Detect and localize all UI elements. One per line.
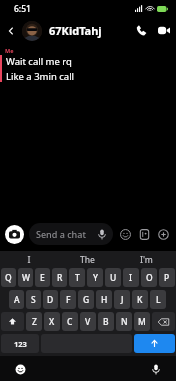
staticText: The [80, 254, 95, 266]
button[interactable]: O [141, 268, 157, 287]
button[interactable]: I [123, 268, 139, 287]
button[interactable]: Shift [1, 312, 24, 331]
button[interactable]: More options [156, 227, 171, 242]
button[interactable]: Stickers [137, 227, 152, 242]
button[interactable]: F [60, 290, 76, 309]
staticText: 123 [14, 339, 27, 349]
staticText: W [22, 272, 30, 284]
button[interactable]: S [26, 290, 41, 309]
staticText: I'm [140, 254, 153, 266]
other: Voice note [98, 229, 106, 240]
button[interactable]: Voice input [148, 361, 164, 377]
button[interactable]: T [69, 268, 85, 287]
staticText: 67KidTahj [49, 23, 102, 38]
staticText: U [110, 272, 117, 284]
staticText: V [85, 316, 91, 328]
button[interactable]: B [98, 312, 114, 331]
staticText: I [129, 272, 133, 284]
button[interactable]: W [18, 268, 33, 287]
staticText: S [31, 294, 36, 306]
staticText: Send a chat [36, 228, 98, 240]
button[interactable]: L [150, 290, 166, 309]
button[interactable]: Z [26, 312, 42, 331]
button[interactable]: Video call [152, 17, 176, 44]
button[interactable]: C [62, 312, 78, 331]
button[interactable]: A [9, 290, 24, 309]
button[interactable]: P [159, 268, 175, 287]
button[interactable]: The [58, 251, 117, 268]
button[interactable]: D [43, 290, 58, 309]
button[interactable]: Y [87, 268, 103, 287]
staticText: B [103, 316, 109, 328]
button[interactable]: Backspace [152, 312, 175, 331]
staticText: Wait call me rq [6, 55, 72, 68]
staticText: G [83, 294, 90, 306]
button[interactable]: V [80, 312, 96, 331]
staticText: T [75, 272, 80, 284]
staticText: C [67, 316, 73, 328]
button[interactable]: H [96, 290, 112, 309]
button[interactable]: R [52, 268, 67, 287]
button[interactable]: J [114, 290, 130, 309]
staticText: Me [5, 47, 14, 54]
staticText: P [164, 272, 170, 284]
button[interactable]: I [0, 251, 58, 268]
button[interactable]: Profile [22, 21, 42, 41]
staticText: A [14, 294, 20, 306]
button[interactable]: G [78, 290, 94, 309]
staticText: I [27, 254, 31, 266]
staticText: D [47, 294, 54, 306]
staticText: Q [5, 272, 12, 284]
staticText: J [121, 294, 124, 306]
staticText: H [101, 294, 108, 306]
staticText: M [138, 316, 146, 328]
button[interactable]: Voice call [130, 17, 152, 44]
staticText: X [49, 316, 55, 328]
button[interactable]: Emoji keyboard [12, 361, 28, 377]
button[interactable]: E [35, 268, 50, 287]
button[interactable]: U [105, 268, 121, 287]
button[interactable]: Send [134, 334, 175, 353]
staticText: R [57, 272, 63, 284]
button[interactable]: M [134, 312, 150, 331]
staticText: L [156, 294, 161, 306]
button[interactable]: I'm [117, 251, 176, 268]
staticText: F [66, 294, 71, 306]
staticText: O [146, 272, 153, 284]
staticText: Y [93, 272, 98, 284]
button[interactable]: Camera [5, 225, 24, 244]
staticText: Like a 3min call [6, 70, 75, 83]
staticText: 6:51 [14, 3, 31, 15]
button[interactable]: X [44, 312, 60, 331]
button[interactable]: Back [0, 17, 22, 44]
button[interactable]: Emoji [118, 227, 133, 242]
button[interactable]: 123 [1, 334, 39, 353]
staticText: Z [32, 316, 37, 328]
button[interactable]: K [132, 290, 148, 309]
staticText: N [121, 316, 128, 328]
button[interactable]: 67KidTahj [49, 17, 130, 44]
button[interactable]: N [116, 312, 132, 331]
button[interactable]: Q [1, 268, 16, 287]
button[interactable]: Wait call me rq [0, 55, 176, 83]
staticText: E [40, 272, 45, 284]
staticText: K [137, 294, 143, 306]
button[interactable]: Send a chat [29, 223, 113, 245]
